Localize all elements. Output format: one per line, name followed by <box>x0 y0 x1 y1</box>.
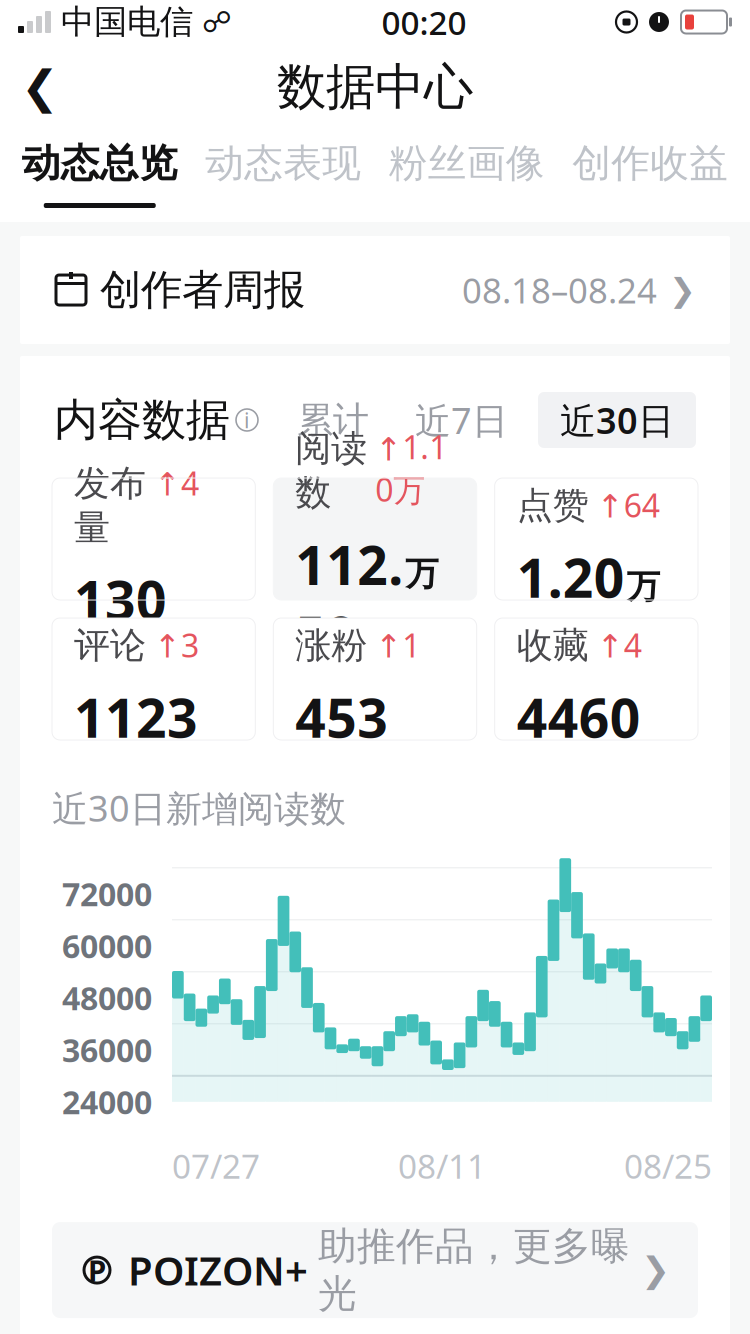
button[interactable]: 近7日 <box>399 392 524 448</box>
staticText: P <box>88 1251 106 1290</box>
staticText: 万 <box>627 566 660 607</box>
button[interactable]: 创作收益 <box>558 130 742 222</box>
staticText: 48000 <box>62 977 152 1019</box>
staticText: ❯ <box>669 272 696 308</box>
staticText: ↑1.10万 <box>375 426 447 511</box>
staticText: 动态总览 <box>22 139 178 187</box>
staticText: 数据中心 <box>277 57 473 117</box>
staticText: i <box>244 406 250 434</box>
staticText: 近30日 <box>560 396 674 444</box>
staticText: 07/27 <box>172 1144 260 1188</box>
button[interactable]: 点赞 <box>495 478 698 600</box>
staticText: 72000 <box>62 873 152 915</box>
staticText: 36000 <box>62 1029 152 1071</box>
button[interactable]: 涨粉 <box>273 618 477 740</box>
button[interactable]: 近30日 <box>538 392 696 448</box>
staticText: 60000 <box>62 925 152 967</box>
button[interactable]: P <box>52 1222 698 1318</box>
staticText: 08/11 <box>398 1144 486 1188</box>
staticText: 评论 <box>74 623 146 668</box>
staticText: 粉丝画像 <box>389 139 545 187</box>
staticText: 00:20 <box>381 0 466 44</box>
staticText: 1123 <box>74 682 198 752</box>
button[interactable]: 动态总览 <box>8 130 191 222</box>
staticText: 发布量 <box>74 461 146 550</box>
button[interactable]: 评论 <box>52 618 255 740</box>
staticText: 近7日 <box>415 396 508 444</box>
staticText: ❮ <box>21 61 59 113</box>
staticText: ↑64 <box>597 484 660 526</box>
staticText: 中国电信 <box>61 1 193 42</box>
staticText: 阅读数 <box>295 426 367 515</box>
staticText: POIZON+ <box>128 1243 308 1297</box>
staticText: 点赞 <box>517 483 589 528</box>
staticText: 内容数据 <box>54 393 230 447</box>
staticText: 创作者周报 <box>100 265 305 315</box>
staticText: 涨粉 <box>295 623 367 668</box>
button[interactable]: 阅读数 <box>273 478 477 600</box>
staticText: 累计 <box>297 398 369 442</box>
staticText: ☍ <box>202 5 232 39</box>
staticText: ❯ <box>641 1250 670 1290</box>
staticText: ↑4 <box>597 624 642 666</box>
staticText: 24000 <box>62 1081 152 1123</box>
staticText: 万 <box>405 553 438 594</box>
button[interactable]: 粉丝画像 <box>375 130 558 222</box>
staticText: 130 <box>74 564 167 635</box>
staticText: 收藏 <box>517 623 589 668</box>
staticText: 08.18–08.24 <box>462 267 657 313</box>
staticText: ↑1 <box>375 624 420 666</box>
staticText: 助推作品，更多曝光 <box>318 1223 630 1318</box>
button[interactable]: 收藏 <box>495 618 698 740</box>
button[interactable]: 发布量 <box>52 478 255 600</box>
staticText: 创作收益 <box>572 139 728 187</box>
button[interactable]: 创作者周报 <box>20 236 730 344</box>
staticText: ↑4 <box>154 462 199 504</box>
staticText: 08/25 <box>624 1144 712 1188</box>
staticText: ↑3 <box>154 624 199 666</box>
staticText: 112.59 <box>295 529 403 670</box>
staticText: 动态表现 <box>205 139 361 187</box>
button[interactable]: 动态表现 <box>191 130 375 222</box>
staticText: 1.20 <box>517 542 625 612</box>
button[interactable]: 累计 <box>281 392 385 448</box>
button[interactable]: 返回 <box>0 47 80 127</box>
staticText: 4460 <box>517 682 641 752</box>
staticText: 近30日新增阅读数 <box>52 784 346 832</box>
staticText: 453 <box>295 682 388 752</box>
